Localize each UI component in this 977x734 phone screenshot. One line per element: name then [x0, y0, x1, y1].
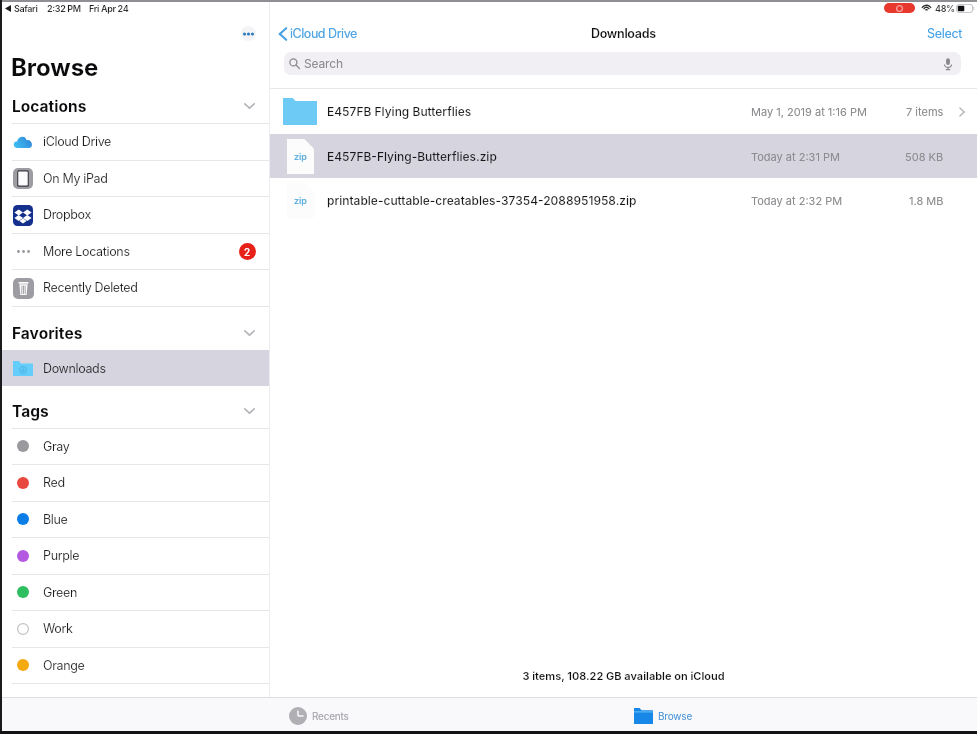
- staticText: Recently Deleted: [43, 280, 138, 295]
- button[interactable]: Recently Deleted: [0, 269, 269, 306]
- button[interactable]: Orange: [0, 647, 269, 683]
- button[interactable]: Browse: [629, 697, 699, 734]
- button[interactable]: Work: [0, 610, 269, 647]
- button[interactable]: Gray: [0, 428, 269, 464]
- staticText: iCloud Drive: [290, 26, 357, 41]
- staticText: Safari: [14, 3, 38, 14]
- staticText: Today at 2:32 PM: [751, 194, 843, 207]
- button[interactable]: Select: [927, 26, 977, 41]
- staticText: Locations: [12, 97, 87, 116]
- button[interactable]: More options: [241, 26, 256, 41]
- staticText: May 1, 2019 at 1:16 PM: [751, 105, 867, 118]
- button[interactable]: Purple: [0, 537, 269, 574]
- staticText: Gray: [43, 439, 70, 454]
- staticText: zip: [294, 151, 307, 162]
- staticText: More Locations: [43, 244, 130, 259]
- staticText: Work: [43, 621, 73, 636]
- staticText: Downloads: [591, 26, 656, 41]
- button[interactable]: Blue: [0, 501, 269, 537]
- staticText: Dropbox: [43, 207, 91, 222]
- staticText: Green: [43, 585, 78, 600]
- staticText: Red: [43, 475, 65, 490]
- button[interactable]: iCloud Drive: [270, 26, 357, 41]
- staticText: 2:32 PM: [47, 3, 81, 14]
- staticText: On My iPad: [43, 171, 108, 186]
- button[interactable]: Tags: [0, 394, 269, 428]
- button[interactable]: E457FB Flying Butterflies: [270, 89, 977, 134]
- staticText: Today at 2:31 PM: [751, 150, 840, 163]
- button[interactable]: Red: [0, 464, 269, 501]
- staticText: E457FB-Flying-Butterflies.zip: [327, 149, 497, 164]
- staticText: Browse: [658, 710, 693, 722]
- button[interactable]: Recents: [284, 697, 355, 734]
- staticText: E457FB Flying Butterflies: [327, 104, 472, 119]
- staticText: Fri Apr 24: [89, 3, 129, 14]
- staticText: Favorites: [12, 324, 83, 343]
- button[interactable]: zip: [270, 134, 977, 178]
- staticText: 48%: [935, 3, 955, 14]
- staticText: Orange: [43, 658, 85, 673]
- staticText: 1.8 MB: [909, 194, 944, 207]
- button[interactable]: iCloud Drive: [0, 123, 269, 160]
- staticText: iCloud Drive: [43, 134, 112, 149]
- button[interactable]: Search: [284, 52, 961, 75]
- staticText: Recents: [312, 710, 349, 722]
- button[interactable]: More Locations: [0, 233, 269, 269]
- staticText: Search: [304, 56, 343, 71]
- staticText: zip: [294, 195, 307, 206]
- staticText: 508 KB: [905, 150, 944, 163]
- button[interactable]: Green: [0, 574, 269, 610]
- staticText: printable-cuttable-creatables-37354-2088…: [327, 193, 637, 208]
- button[interactable]: Downloads: [0, 350, 269, 386]
- staticText: Tags: [12, 402, 49, 421]
- staticText: 7 items: [906, 105, 944, 118]
- staticText: 3 items, 108.22 GB available on iCloud: [270, 669, 977, 682]
- button[interactable]: Dropbox: [0, 196, 269, 233]
- button[interactable]: On My iPad: [0, 160, 269, 196]
- staticText: Downloads: [43, 361, 106, 376]
- button[interactable]: zip: [270, 178, 977, 222]
- staticText: Purple: [43, 548, 80, 563]
- staticText: 2: [244, 246, 251, 258]
- staticText: Browse: [11, 53, 99, 82]
- button[interactable]: Dictate: [941, 57, 955, 71]
- button[interactable]: Favorites: [0, 316, 269, 350]
- staticText: Blue: [43, 512, 68, 527]
- button[interactable]: Locations: [0, 89, 269, 123]
